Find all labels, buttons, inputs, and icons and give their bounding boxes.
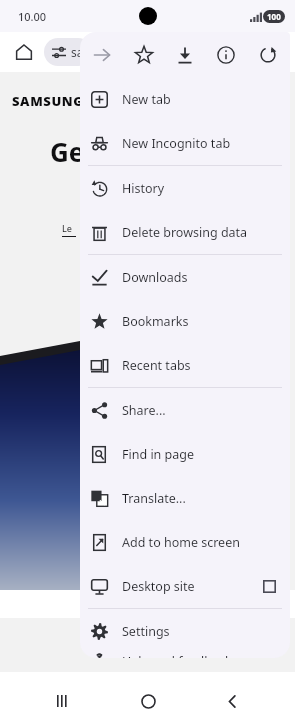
staticText: Add to home screen <box>122 534 240 551</box>
button[interactable]: Downloads <box>80 255 290 299</box>
button[interactable]: Settings <box>80 609 290 653</box>
button[interactable]: Delete browsing data <box>80 210 290 254</box>
button[interactable]: Forward <box>83 36 121 74</box>
staticText: sa <box>71 44 84 60</box>
staticText: Ge <box>50 134 85 169</box>
button[interactable]: Share... <box>80 388 290 432</box>
staticText: Delete browsing data <box>122 224 248 241</box>
staticText: Share... <box>122 402 166 419</box>
button[interactable]: Recent tabs <box>80 343 290 387</box>
staticText: Find in page <box>122 446 195 463</box>
button[interactable]: Home <box>8 36 40 68</box>
button[interactable]: Translate... <box>80 476 290 520</box>
button[interactable]: New Incognito tab <box>80 121 290 165</box>
staticText: Bookmarks <box>122 313 189 330</box>
button[interactable]: Back <box>210 680 254 722</box>
staticText: New tab <box>122 91 171 108</box>
button[interactable]: sa <box>44 38 92 66</box>
staticText: Le <box>62 222 72 234</box>
button[interactable]: Add to home screen <box>80 520 290 564</box>
staticText: Recent tabs <box>122 357 191 374</box>
button[interactable]: Home <box>126 680 170 722</box>
button[interactable]: History <box>80 166 290 210</box>
staticText: 100 <box>267 11 281 22</box>
button[interactable]: Bookmark <box>125 36 163 74</box>
button[interactable]: Desktop site <box>80 564 290 608</box>
button[interactable]: Download <box>166 36 204 74</box>
button[interactable]: Reload <box>249 36 287 74</box>
staticText: Downloads <box>122 269 188 286</box>
button[interactable]: Bookmarks <box>80 299 290 343</box>
button[interactable]: Page info <box>207 36 245 74</box>
button[interactable]: Help and feedback <box>80 653 290 658</box>
staticText: History <box>122 180 165 197</box>
staticText: Settings <box>122 623 170 640</box>
button[interactable]: Recents <box>41 680 85 722</box>
staticText: New Incognito tab <box>122 135 231 152</box>
staticText: Translate... <box>122 490 186 507</box>
staticText: Desktop site <box>122 578 195 595</box>
button[interactable]: New tab <box>80 77 290 121</box>
staticText: SAMSUNG <box>12 92 84 110</box>
staticText: Help and feedback <box>122 653 232 658</box>
staticText: 10.00 <box>18 9 47 24</box>
button[interactable]: Find in page <box>80 432 290 476</box>
